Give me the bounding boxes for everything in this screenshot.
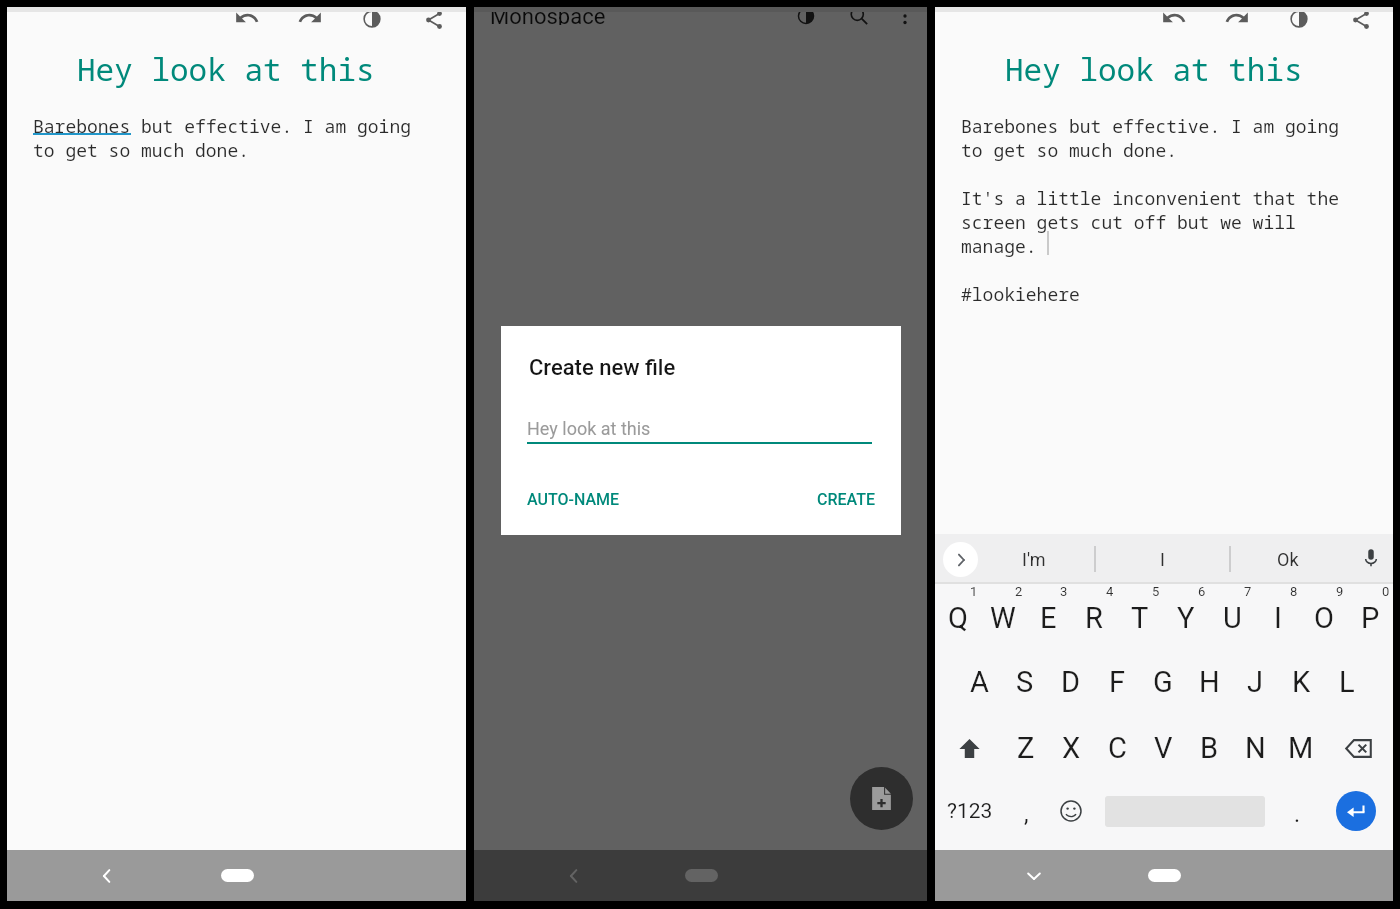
button[interactable]: V	[1140, 715, 1186, 781]
staticText: P	[1361, 601, 1380, 635]
button[interactable]: Expand toolbar	[943, 542, 978, 577]
staticText: 7	[1244, 584, 1252, 599]
button[interactable]: I	[1117, 534, 1207, 584]
staticText: W	[990, 601, 1016, 635]
button[interactable]: AUTO-NAME	[527, 490, 620, 509]
button[interactable]: ?123	[935, 778, 1005, 844]
staticText: 1	[970, 584, 978, 599]
button[interactable]: Home	[665, 850, 737, 901]
button[interactable]: W	[980, 581, 1025, 647]
staticText: T	[1131, 601, 1149, 635]
button[interactable]: D	[1048, 649, 1094, 715]
staticText: F	[1109, 665, 1126, 699]
button[interactable]: Z	[1003, 715, 1048, 781]
button[interactable]: Home	[1128, 850, 1200, 901]
button[interactable]: More options	[884, 7, 926, 28]
staticText: Z	[1017, 731, 1035, 765]
button[interactable]: Backspace	[1324, 715, 1393, 781]
staticText: Barebones but effective. I am going to g…	[33, 114, 433, 162]
button[interactable]: R	[1071, 581, 1117, 647]
button[interactable]: Back	[551, 850, 595, 901]
staticText: Y	[1177, 601, 1195, 635]
staticText: A	[970, 665, 989, 699]
button[interactable]: B	[1186, 715, 1232, 781]
button[interactable]: H	[1186, 649, 1232, 715]
staticText: Ok	[1277, 549, 1299, 570]
button[interactable]: Y	[1163, 581, 1209, 647]
button[interactable]: A	[957, 649, 1002, 715]
staticText: M	[1288, 731, 1314, 765]
button[interactable]: K	[1278, 649, 1324, 715]
button[interactable]: Ok	[1243, 534, 1333, 584]
staticText: I	[1160, 549, 1165, 570]
button[interactable]: Redo	[289, 7, 331, 29]
button[interactable]: Create new file	[850, 767, 913, 830]
button[interactable]: Home	[201, 850, 273, 901]
button[interactable]: J	[1232, 649, 1278, 715]
staticText: X	[1062, 731, 1081, 765]
button[interactable]: Undo	[1153, 7, 1195, 29]
staticText: L	[1339, 665, 1355, 699]
button[interactable]: Back	[84, 850, 128, 901]
staticText: 0	[1382, 584, 1390, 599]
staticText: 8	[1290, 584, 1298, 599]
button[interactable]: T	[1117, 581, 1163, 647]
button[interactable]: Emoji	[1047, 778, 1095, 844]
button[interactable]: G	[1140, 649, 1186, 715]
button[interactable]: P	[1347, 581, 1393, 647]
staticText: 5	[1152, 584, 1160, 599]
button[interactable]: U	[1209, 581, 1255, 647]
staticText: K	[1292, 665, 1311, 699]
staticText: D	[1061, 665, 1081, 699]
button[interactable]: Hide keyboard	[1012, 850, 1056, 901]
staticText: Hey look at this	[77, 48, 375, 90]
button[interactable]: E	[1025, 581, 1071, 647]
staticText: Monospace	[490, 7, 606, 25]
button[interactable]: O	[1301, 581, 1347, 647]
button[interactable]: Share	[413, 7, 455, 29]
button[interactable]: Shift	[935, 715, 1003, 781]
staticText: C	[1108, 731, 1127, 765]
button[interactable]: Contrast	[351, 7, 393, 29]
button[interactable]: S	[1002, 649, 1048, 715]
staticText: I'm	[1022, 549, 1046, 570]
button[interactable]: Contrast	[785, 7, 827, 28]
staticText: O	[1314, 601, 1334, 635]
button[interactable]: X	[1048, 715, 1094, 781]
button[interactable]: I	[1255, 581, 1301, 647]
button[interactable]: Voice input	[1351, 538, 1391, 578]
staticText: S	[1016, 665, 1034, 699]
staticText: Hey look at this	[527, 418, 651, 439]
button[interactable]: C	[1094, 715, 1140, 781]
button[interactable]: Redo	[1216, 7, 1258, 29]
button[interactable]: F	[1094, 649, 1140, 715]
staticText: B	[1200, 731, 1219, 765]
button[interactable]: CREATE	[817, 490, 875, 509]
button[interactable]: Space	[1095, 778, 1275, 844]
staticText: Barebones but effective. I am going to g…	[961, 114, 1361, 306]
staticText: Create new file	[529, 355, 676, 381]
staticText: CREATE	[817, 490, 875, 509]
button[interactable]: L	[1324, 649, 1370, 715]
staticText: Hey look at this	[1005, 48, 1303, 90]
button[interactable]: I'm	[989, 534, 1079, 584]
staticText: 9	[1336, 584, 1344, 599]
button[interactable]: Undo	[226, 7, 268, 29]
button[interactable]: .	[1275, 778, 1319, 844]
button[interactable]: Share	[1340, 7, 1382, 29]
staticText: J	[1247, 665, 1264, 699]
button[interactable]: N	[1232, 715, 1278, 781]
button[interactable]: Contrast	[1278, 7, 1320, 29]
button[interactable]: Enter	[1336, 791, 1376, 831]
button[interactable]: Q	[935, 581, 980, 647]
staticText: V	[1154, 731, 1173, 765]
staticText: 4	[1106, 584, 1114, 599]
staticText: R	[1085, 601, 1103, 635]
staticText: 6	[1198, 584, 1206, 599]
button[interactable]: ,	[1005, 778, 1047, 844]
button[interactable]: Search	[838, 7, 880, 28]
staticText: 3	[1060, 584, 1068, 599]
staticText: .	[1294, 801, 1301, 828]
button[interactable]: M	[1278, 715, 1324, 781]
staticText: 2	[1015, 584, 1023, 599]
